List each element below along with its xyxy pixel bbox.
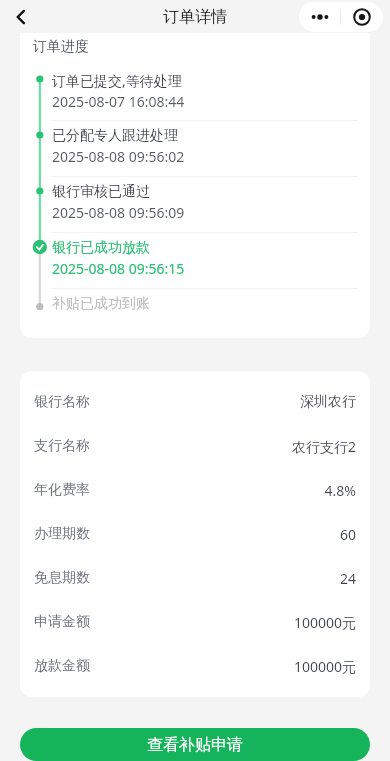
- staticText: 2025-08-08 09:56:15: [52, 259, 185, 278]
- button[interactable]: 支行名称: [20, 424, 370, 468]
- staticText: 年化费率: [34, 481, 90, 499]
- staticText: 补贴已成功到账: [52, 295, 150, 313]
- staticText: 60: [339, 525, 356, 544]
- button[interactable]: 年化费率: [20, 468, 370, 512]
- staticText: 2025-08-08 09:56:09: [52, 203, 185, 222]
- button[interactable]: 查看补贴申请: [20, 728, 370, 761]
- button[interactable]: Close: [341, 2, 383, 32]
- staticText: 已分配专人跟进处理: [52, 127, 178, 145]
- staticText: 24: [339, 569, 356, 588]
- staticText: 办理期数: [34, 525, 90, 543]
- staticText: 申请金额: [34, 613, 90, 631]
- button[interactable]: 放款金额: [20, 644, 370, 688]
- staticText: 订单详情: [163, 7, 227, 27]
- staticText: 100000元: [293, 657, 356, 676]
- button[interactable]: 办理期数: [20, 512, 370, 556]
- staticText: 2025-08-07 16:08:44: [52, 92, 185, 111]
- button[interactable]: 银行名称: [20, 380, 370, 424]
- staticText: 深圳农行: [300, 393, 356, 411]
- staticText: 查看补贴申请: [147, 735, 243, 755]
- staticText: 银行名称: [34, 393, 90, 411]
- staticText: 100000元: [293, 613, 356, 632]
- staticText: 支行名称: [34, 437, 90, 455]
- staticText: 订单进度: [33, 38, 89, 56]
- button[interactable]: More options: [299, 2, 340, 32]
- staticText: 农行支行2: [291, 437, 356, 456]
- staticText: 放款金额: [34, 657, 90, 675]
- staticText: 免息期数: [34, 569, 90, 587]
- button[interactable]: Back: [0, 0, 42, 33]
- staticText: 2025-08-08 09:56:02: [52, 147, 185, 166]
- button[interactable]: 免息期数: [20, 556, 370, 600]
- button[interactable]: 申请金额: [20, 600, 370, 644]
- staticText: 银行审核已通过: [52, 183, 150, 201]
- staticText: 银行已成功放款: [52, 239, 150, 257]
- staticText: 4.8%: [324, 481, 356, 500]
- staticText: 订单已提交,等待处理: [52, 71, 182, 90]
